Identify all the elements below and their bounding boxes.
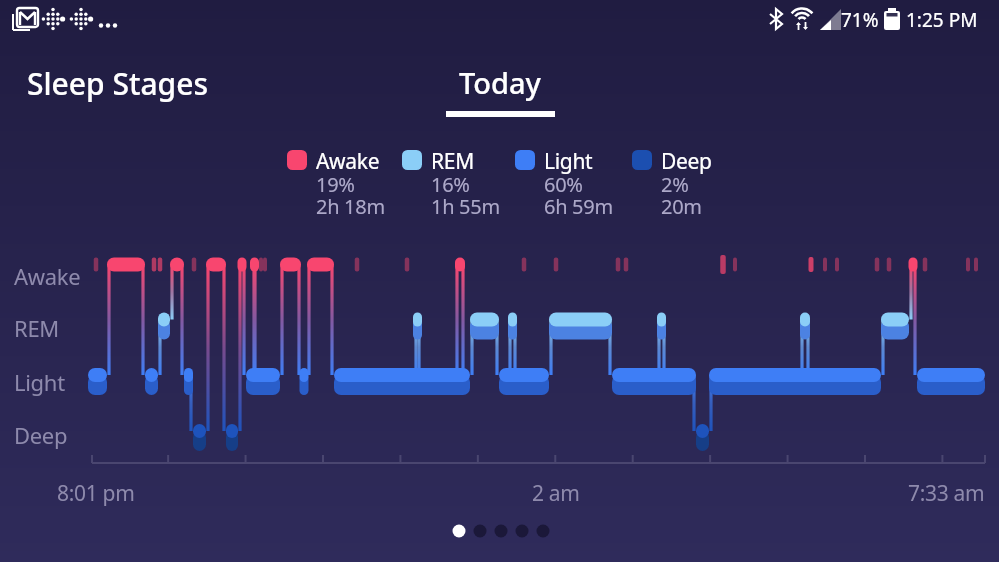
staticText: 16% xyxy=(431,171,470,198)
staticText: 2h 18m xyxy=(316,193,385,220)
button[interactable]: Today xyxy=(459,63,541,102)
staticText: 6h 59m xyxy=(544,193,613,220)
staticText: 60% xyxy=(544,171,583,198)
staticText: Today xyxy=(459,63,541,102)
staticText: Deep xyxy=(661,147,712,176)
staticText: 71% xyxy=(841,7,879,33)
staticText: REM xyxy=(431,147,474,176)
staticText: 7:33 am xyxy=(908,479,985,508)
staticText: 1h 55m xyxy=(431,193,500,220)
staticText: Light xyxy=(544,147,593,176)
staticText: 8:01 pm xyxy=(57,479,135,508)
staticText: Light xyxy=(14,367,65,397)
staticText: Deep xyxy=(14,420,68,450)
staticText: 2% xyxy=(661,171,689,198)
staticText: Awake xyxy=(316,147,380,176)
staticText: 2 am xyxy=(532,479,580,508)
staticText: Awake xyxy=(14,261,81,291)
staticText: Sleep Stages xyxy=(27,63,208,104)
staticText: REM xyxy=(14,313,59,343)
staticText: 19% xyxy=(316,171,355,198)
staticText: 1:25 PM xyxy=(906,7,978,33)
staticText: 20m xyxy=(661,193,702,220)
